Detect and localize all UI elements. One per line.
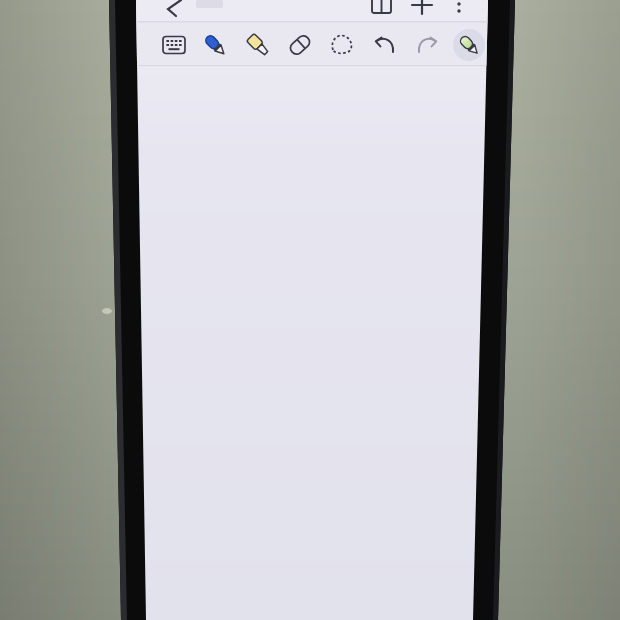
button[interactable]: Highlighter <box>242 27 275 63</box>
button[interactable]: Current pen <box>452 27 487 63</box>
button[interactable]: Back <box>168 0 194 22</box>
button[interactable]: Eraser <box>284 27 317 63</box>
button[interactable]: Add <box>408 0 436 22</box>
button[interactable]: Keyboard <box>158 27 191 63</box>
button[interactable]: Undo <box>369 27 402 63</box>
button[interactable]: Notebooks <box>362 0 388 22</box>
button[interactable]: Pen <box>199 27 232 63</box>
button[interactable]: More options <box>448 0 472 22</box>
button[interactable]: Lasso select <box>326 27 359 63</box>
button[interactable]: Redo <box>411 27 444 63</box>
